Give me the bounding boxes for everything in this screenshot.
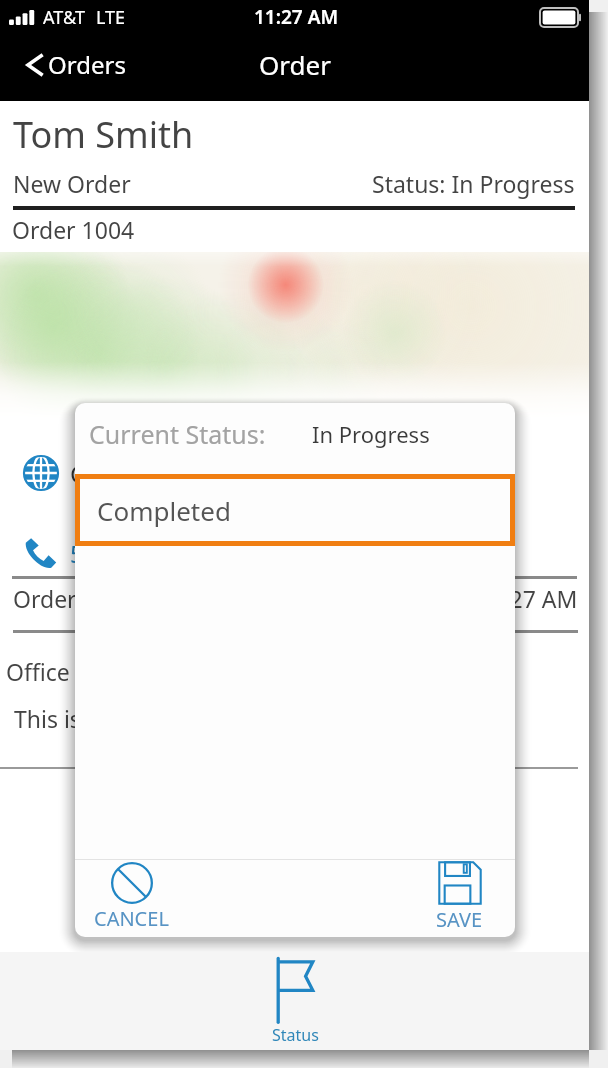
staticText: This is a note about the order. <box>14 703 335 734</box>
staticText: Current Status: <box>89 417 266 451</box>
staticText: CANCEL <box>94 905 169 932</box>
staticText: In Progress <box>312 419 430 449</box>
staticText: SAVE <box>436 906 483 933</box>
staticText: Orders <box>48 48 126 81</box>
staticText: Company Site <box>70 457 226 490</box>
staticText: 11:27 AM <box>477 583 578 614</box>
other: Call <box>22 534 60 572</box>
staticText: Order 1004 <box>12 214 135 245</box>
staticText: Status <box>272 1024 319 1046</box>
button[interactable]: Completed <box>75 474 515 546</box>
staticText: 11:27 AM <box>254 4 339 30</box>
staticText: New Order <box>13 168 131 199</box>
staticText: Completed <box>97 493 231 528</box>
staticText: 555-555-5555 <box>70 537 223 570</box>
button[interactable]: Status <box>271 952 319 1046</box>
staticText: Tom Smith <box>13 110 194 159</box>
other: Website <box>22 454 60 492</box>
staticText: AT&T <box>43 5 85 30</box>
staticText: LTE <box>96 5 126 30</box>
staticText: Status: In Progress <box>372 168 575 199</box>
button[interactable]: Call <box>22 534 223 572</box>
button[interactable]: Website <box>22 454 226 492</box>
staticText: Order <box>259 47 331 82</box>
button[interactable]: SAVE <box>413 860 505 937</box>
button[interactable]: Back <box>26 48 126 81</box>
button[interactable]: CANCEL <box>85 860 177 937</box>
staticText: Order Date <box>13 583 134 614</box>
other: Back <box>26 54 43 76</box>
staticText: Office Notes <box>6 656 140 687</box>
